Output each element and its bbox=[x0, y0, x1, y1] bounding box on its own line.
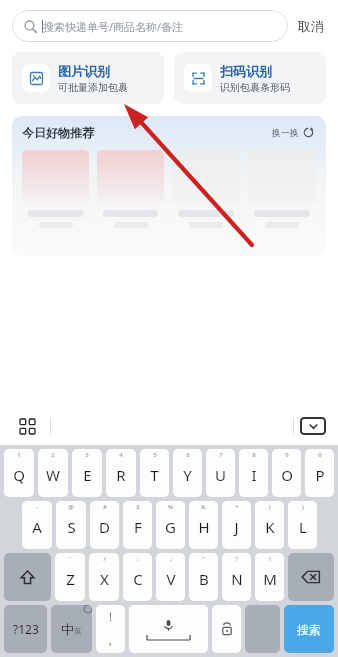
staticText: ! bbox=[109, 610, 112, 624]
staticText: U bbox=[215, 465, 226, 485]
staticText: @ bbox=[68, 503, 74, 511]
button[interactable]: # bbox=[90, 501, 119, 549]
staticText: 识别包裹条形码 bbox=[220, 81, 290, 94]
staticText: T bbox=[150, 465, 159, 485]
button[interactable]: ) bbox=[288, 501, 317, 549]
staticText: $ bbox=[136, 503, 140, 511]
button[interactable]: - bbox=[22, 501, 52, 549]
button[interactable]: 收起键盘 bbox=[300, 417, 326, 435]
staticText: 搜索快递单号/商品名称/备注 bbox=[43, 19, 184, 34]
button[interactable]: 表情 bbox=[212, 605, 241, 653]
staticText: ?123 bbox=[13, 621, 39, 637]
staticText: 英 bbox=[74, 626, 82, 636]
button[interactable]: 图片识别 bbox=[12, 52, 164, 104]
button[interactable]: $ bbox=[123, 501, 152, 549]
staticText: 扫码识别 bbox=[220, 63, 272, 79]
staticText: K bbox=[265, 517, 275, 537]
staticText: 今日好物推荐 bbox=[22, 125, 94, 140]
staticText: D bbox=[99, 517, 110, 537]
button[interactable]: 键盘面板 bbox=[16, 415, 38, 437]
button[interactable]: / bbox=[89, 553, 119, 601]
other: 刷新 bbox=[303, 127, 314, 138]
staticText: ) bbox=[302, 503, 304, 511]
button[interactable]: 5 bbox=[140, 449, 169, 497]
staticText: M bbox=[263, 569, 277, 589]
staticText: E bbox=[83, 465, 92, 485]
staticText: % bbox=[168, 503, 173, 511]
staticText: 可批量添加包裹 bbox=[58, 81, 128, 94]
button[interactable]: 1 bbox=[4, 449, 34, 497]
button[interactable]: 换一换 bbox=[270, 125, 316, 140]
button[interactable]: Shift bbox=[4, 553, 51, 601]
button[interactable]: 9 bbox=[272, 449, 301, 497]
staticText: I bbox=[251, 465, 257, 485]
button[interactable]: ; bbox=[156, 553, 185, 601]
button[interactable]: 8 bbox=[239, 449, 268, 497]
staticText: V bbox=[166, 569, 176, 589]
staticText: ? bbox=[235, 555, 238, 563]
button[interactable]: ?123 bbox=[4, 605, 47, 653]
button[interactable]: 4 bbox=[106, 449, 136, 497]
button[interactable]: ( bbox=[255, 501, 284, 549]
staticText: S bbox=[67, 517, 76, 537]
staticText: : bbox=[137, 555, 139, 563]
button[interactable]: % bbox=[156, 501, 185, 549]
button[interactable]: 删除 bbox=[288, 553, 334, 601]
staticText: 6 bbox=[186, 451, 190, 459]
button[interactable]: ? bbox=[222, 553, 251, 601]
staticText: ( bbox=[269, 503, 271, 511]
button[interactable]: 标点 bbox=[96, 605, 125, 653]
button[interactable]: 3 bbox=[72, 449, 102, 497]
button[interactable]: 今日好物推荐 bbox=[12, 116, 326, 256]
staticText: Y bbox=[183, 465, 192, 485]
button[interactable]: 2 bbox=[38, 449, 68, 497]
staticText: 1 bbox=[17, 451, 21, 459]
button[interactable]: 搜索快递单号/商品名称/备注 bbox=[12, 10, 288, 42]
staticText: P bbox=[315, 465, 325, 485]
button[interactable]: 扫码识别 bbox=[174, 52, 326, 104]
staticText: 0 bbox=[318, 451, 322, 459]
button[interactable]: 6 bbox=[173, 449, 202, 497]
button[interactable]: ' bbox=[55, 553, 85, 601]
button[interactable]: " bbox=[189, 553, 218, 601]
staticText: Q bbox=[13, 465, 25, 485]
button[interactable]: 更多 bbox=[245, 605, 280, 653]
staticText: 取消 bbox=[298, 18, 324, 34]
button[interactable]: 7 bbox=[206, 449, 235, 497]
button[interactable]: & bbox=[189, 501, 218, 549]
staticText: ; bbox=[170, 555, 172, 563]
staticText: ' bbox=[69, 555, 71, 563]
staticText: C bbox=[133, 569, 143, 589]
staticText: 换一换 bbox=[272, 127, 299, 138]
staticText: O bbox=[281, 465, 293, 485]
button[interactable]: * bbox=[222, 501, 251, 549]
staticText: " bbox=[202, 555, 205, 563]
staticText: 4 bbox=[119, 451, 123, 459]
staticText: 搜索 bbox=[297, 622, 321, 637]
staticText: # bbox=[103, 503, 107, 511]
staticText: J bbox=[234, 517, 239, 537]
button[interactable]: 搜索 bbox=[284, 605, 334, 653]
staticText: F bbox=[134, 517, 142, 537]
staticText: ! bbox=[269, 555, 271, 563]
staticText: B bbox=[199, 569, 209, 589]
staticText: G bbox=[165, 517, 176, 537]
button[interactable]: : bbox=[123, 553, 152, 601]
staticText: * bbox=[235, 503, 239, 511]
staticText: H bbox=[198, 517, 210, 537]
staticText: X bbox=[100, 569, 109, 589]
staticText: 8 bbox=[252, 451, 256, 459]
button[interactable]: ! bbox=[255, 553, 284, 601]
button[interactable]: @ bbox=[56, 501, 86, 549]
button[interactable]: 0 bbox=[305, 449, 334, 497]
staticText: N bbox=[231, 569, 243, 589]
staticText: 2 bbox=[51, 451, 55, 459]
button[interactable]: 空格 bbox=[129, 605, 208, 653]
button[interactable]: 取消 bbox=[288, 18, 326, 34]
staticText: Z bbox=[66, 569, 75, 589]
staticText: R bbox=[116, 465, 126, 485]
staticText: 3 bbox=[85, 451, 89, 459]
staticText: 5 bbox=[153, 451, 157, 459]
button[interactable]: 中 bbox=[51, 605, 92, 653]
staticText: 图片识别 bbox=[58, 63, 110, 79]
